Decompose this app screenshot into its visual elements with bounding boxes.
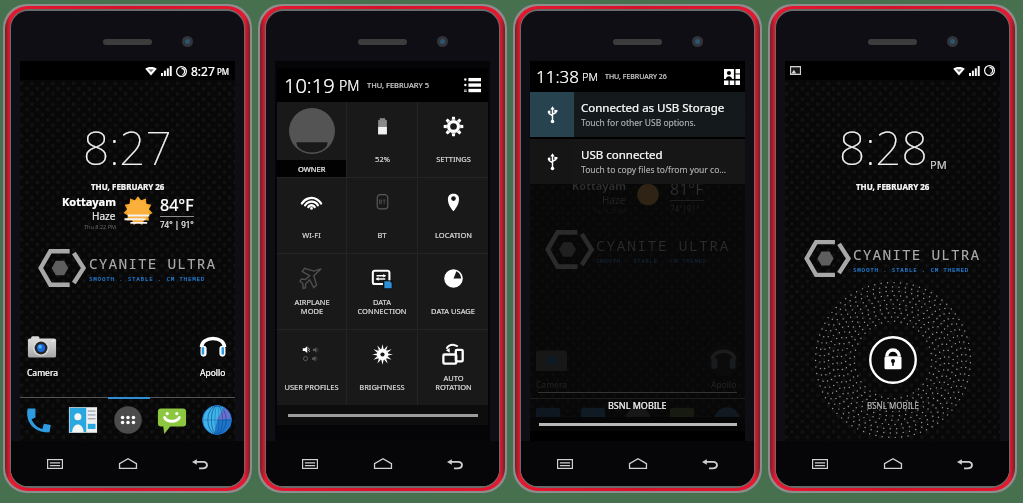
button[interactable]: Home [610,441,666,486]
button[interactable]: Phone [22,404,54,436]
button[interactable]: BRIGHTNESS [347,330,417,405]
staticText: Touch for other USB options. [581,117,696,129]
staticText: SETTINGS [436,154,471,164]
staticText: BSNL MOBILE [608,399,667,411]
staticText: Apollo [200,367,226,379]
button[interactable]: 52% [347,102,417,177]
button[interactable]: SETTINGS [418,102,488,177]
staticText: Apollo [711,379,737,391]
button[interactable]: Camera [26,332,58,379]
button[interactable]: Back [172,441,228,486]
staticText: Thu 8:22 PM [594,207,626,214]
staticText: PM [217,66,230,77]
button[interactable]: DATA USAGE [418,254,488,329]
staticText: 11:38 [536,65,579,88]
staticText: PM [930,157,947,172]
staticText: DATA CONNECTION [357,297,407,316]
staticText: SMOOTH . STABLE . CM THEMED [89,275,206,283]
button[interactable]: Back [682,441,738,486]
button[interactable]: Apollo [197,332,229,379]
button[interactable]: AIRPLANE MODE [277,254,346,329]
button[interactable]: Connected as USB Storage [530,92,745,137]
staticText: 52% [375,154,390,164]
staticText: AUTO ROTATION [435,373,472,392]
button[interactable]: Home [355,441,411,486]
staticText: PM [582,69,599,84]
staticText: 74° | 91° [160,219,194,230]
button[interactable]: BT [347,178,417,253]
staticText: USER PROFILES [284,382,339,392]
button[interactable]: AUTO ROTATION [418,330,488,405]
button[interactable]: WI-FI [277,178,346,253]
staticText: 8:27 [191,63,215,79]
staticText: Touch to copy files to/from your co... [581,164,727,176]
button[interactable]: USER PROFILES [277,330,346,405]
button[interactable]: Contacts [67,404,99,436]
staticText: AIRPLANE MODE [294,297,330,316]
staticText: BT [377,230,387,240]
staticText: LOCATION [435,230,472,240]
button[interactable]: Quick settings [724,69,740,85]
staticText: Camera [536,379,567,391]
button[interactable]: Home [100,441,156,486]
staticText: CYANITE ULTRA [853,244,981,264]
button[interactable]: Menu [282,441,338,486]
staticText: BRIGHTNESS [359,382,405,392]
staticText: DATA USAGE [431,306,475,316]
staticText: USB connected [581,147,663,163]
staticText: CYANITE ULTRA [89,253,217,273]
staticText: 8:27 [83,116,172,179]
staticText: BSNL MOBILE [867,400,919,411]
button[interactable]: Messaging [156,404,188,436]
staticText: Haze [602,193,626,207]
staticText: 74°|91° [670,203,700,214]
staticText: THU, FEBRUARY 26 [605,72,667,82]
staticText: SMOOTH . STABLE . CM THEMED [596,257,707,265]
button[interactable]: USB connected [530,139,745,184]
staticText: THU, FEBRUARY 26 [91,181,165,192]
staticText: 8:28 [839,116,928,179]
staticText: 10:19 [284,72,335,99]
staticText: Connected as USB Storage [581,100,725,116]
staticText: 84°F [160,194,194,216]
button[interactable]: Browser [201,404,233,436]
staticText: WI-FI [302,230,321,240]
staticText: THU, FEBRUARY 5 [367,80,429,90]
button[interactable]: Unlock [868,335,918,385]
staticText: PM [339,76,360,95]
button[interactable]: Menu [792,441,848,486]
staticText: Kottayam [572,178,626,193]
staticText: SMOOTH . STABLE . CM THEMED [853,266,970,274]
staticText: Camera [27,367,58,379]
button[interactable]: DATA CONNECTION [347,254,417,329]
button[interactable]: All apps [112,404,144,436]
button[interactable]: Back [427,441,483,486]
staticText: Haze [92,209,116,223]
button[interactable]: OWNER [277,102,346,177]
staticText: THU, FEBRUARY 26 [856,181,930,192]
button[interactable]: Menu [537,441,593,486]
button[interactable]: Menu [27,441,83,486]
button[interactable]: Home [865,441,921,486]
staticText: Kottayam [62,194,116,209]
button[interactable]: Back [937,441,993,486]
staticText: Thu 8:22 PM [84,223,116,230]
button[interactable]: LOCATION [418,178,488,253]
staticText: OWNER [298,164,326,174]
button[interactable]: Notifications [464,77,481,93]
staticText: 81°F [670,178,704,200]
staticText: CYANITE ULTRA [596,235,730,255]
